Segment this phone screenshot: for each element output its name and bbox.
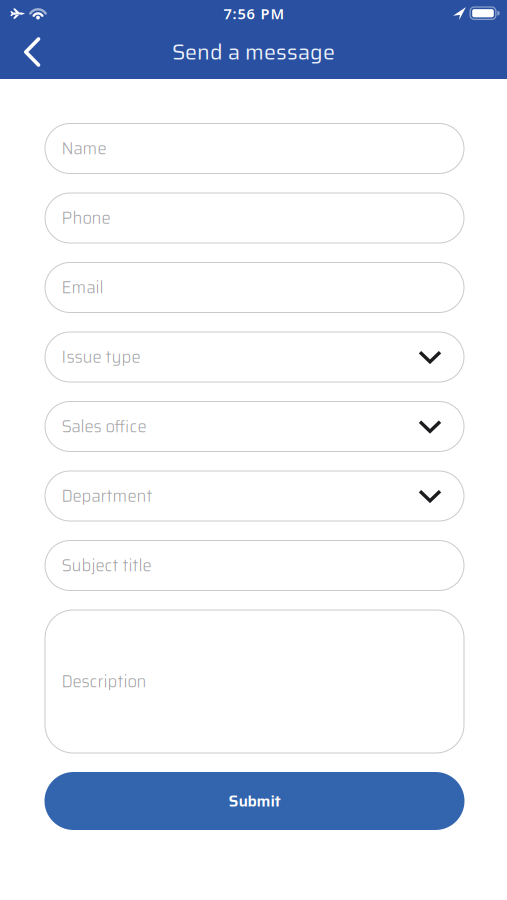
button[interactable]: Subject title: [44, 540, 464, 591]
button[interactable]: Sales office: [44, 401, 464, 452]
staticText: Department: [61, 483, 152, 509]
button[interactable]: Department: [44, 470, 464, 521]
staticText: Phone: [61, 205, 110, 231]
staticText: Submit: [228, 788, 280, 814]
staticText: Sales office: [61, 414, 146, 439]
button[interactable]: [10, 32, 54, 72]
staticText: Issue type: [61, 344, 140, 370]
button[interactable]: Issue type: [44, 331, 464, 382]
button[interactable]: Email: [44, 262, 464, 313]
button[interactable]: Submit: [44, 772, 464, 830]
staticText: Email: [61, 275, 103, 300]
button[interactable]: Phone: [44, 192, 464, 243]
button[interactable]: Description: [44, 609, 464, 753]
button[interactable]: Name: [44, 123, 464, 174]
staticText: Description: [61, 669, 146, 694]
staticText: 7:56 PM: [223, 4, 284, 23]
staticText: Name: [61, 136, 106, 161]
staticText: Subject title: [61, 553, 151, 578]
staticText: Send a message: [172, 35, 335, 69]
